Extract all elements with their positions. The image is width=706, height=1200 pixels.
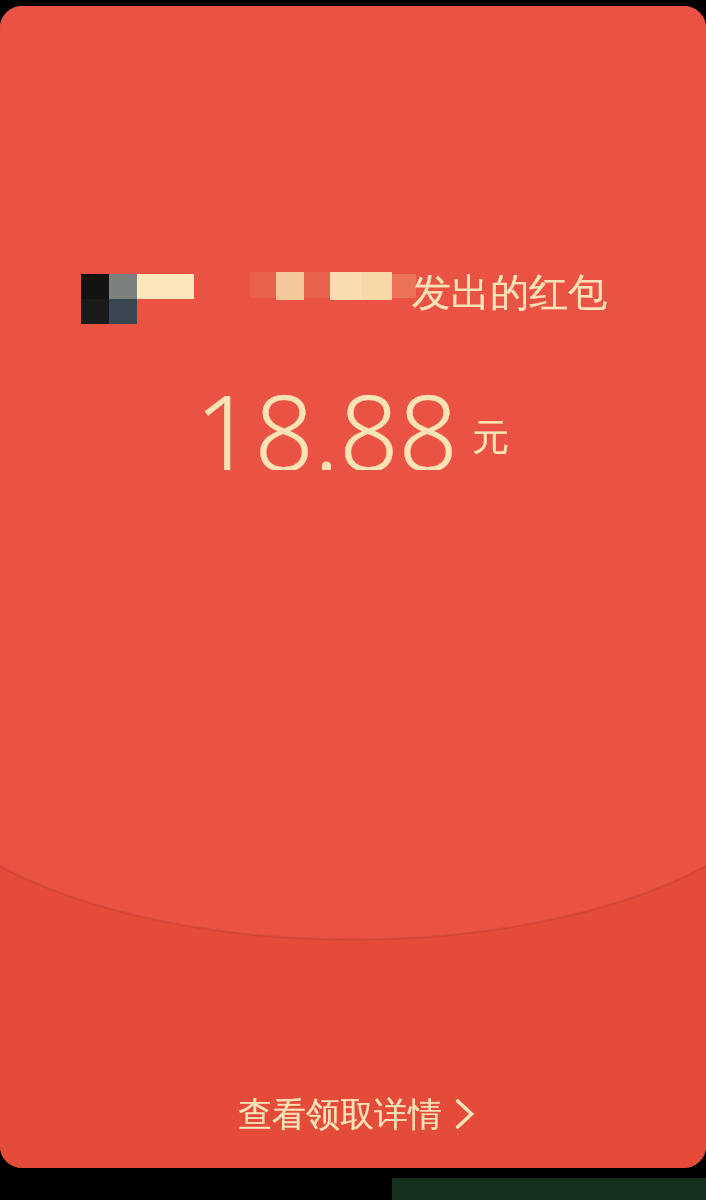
staticText: 18.88 <box>195 360 458 470</box>
staticText: 元 <box>472 414 509 461</box>
staticText: 查看领取详情 <box>238 1093 442 1136</box>
other: View details <box>448 1078 478 1150</box>
staticText: 发出的红包 <box>412 268 607 314</box>
button[interactable]: 查看领取详情 <box>200 1078 506 1150</box>
